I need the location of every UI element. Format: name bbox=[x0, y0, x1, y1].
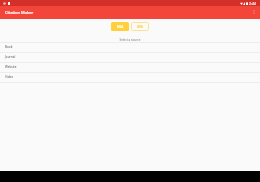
button[interactable]: Video bbox=[0, 73, 260, 83]
button[interactable]: Book bbox=[0, 43, 260, 53]
staticText: Journal bbox=[5, 55, 16, 59]
staticText: Select a source bbox=[0, 38, 260, 42]
staticText: APA bbox=[137, 25, 143, 29]
button[interactable]: Journal bbox=[0, 53, 260, 63]
button[interactable]: MLA bbox=[111, 22, 129, 31]
staticText: Video bbox=[5, 75, 14, 79]
button[interactable]: APA bbox=[131, 22, 149, 31]
staticText: Book bbox=[5, 45, 13, 49]
button[interactable]: Website bbox=[0, 63, 260, 73]
staticText: MLA bbox=[117, 25, 124, 29]
staticText: 2:44 bbox=[249, 1, 257, 6]
staticText: Citation Maker bbox=[5, 10, 34, 15]
button[interactable]: More options bbox=[249, 6, 260, 19]
staticText: Website bbox=[5, 65, 17, 69]
